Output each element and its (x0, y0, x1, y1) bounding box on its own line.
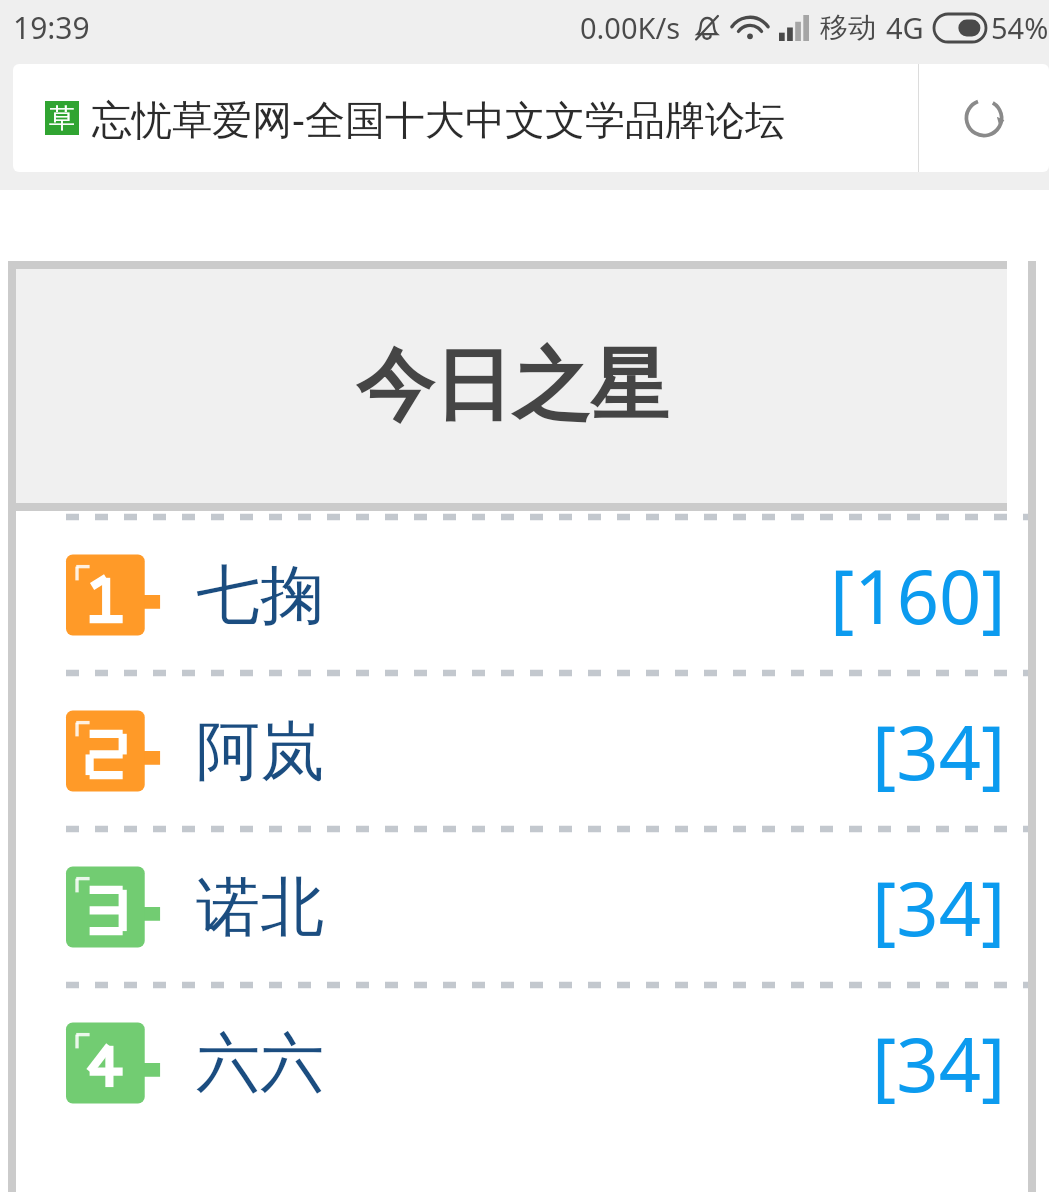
staticText: 今日之星 (356, 337, 668, 435)
button[interactable]: 草 (13, 64, 918, 172)
staticText: 忘忧草爱网-全国十大中文文学品牌论坛 (92, 91, 785, 146)
staticText: 阿岚 (196, 711, 324, 792)
staticText: 54% (991, 8, 1049, 47)
button[interactable]: Reload (919, 64, 1049, 172)
button[interactable]: 六六 (16, 979, 1028, 1135)
button[interactable]: 阿岚 (16, 667, 1028, 823)
staticText: 4G (886, 8, 924, 47)
button[interactable]: 诺北 (16, 823, 1028, 979)
button[interactable]: 七掬 (16, 511, 1028, 667)
staticText: 诺北 (196, 867, 324, 948)
staticText: 0.00K/s (580, 8, 681, 47)
staticText: [160] (830, 545, 1006, 646)
staticText: [34] (872, 1013, 1006, 1114)
staticText: 草 (49, 102, 75, 135)
staticText: 七掬 (196, 555, 324, 636)
staticText: 移动 (820, 10, 876, 45)
staticText: 19:39 (13, 7, 90, 48)
staticText: [34] (872, 857, 1006, 958)
staticText: 六六 (196, 1023, 324, 1104)
staticText: [34] (872, 701, 1006, 802)
